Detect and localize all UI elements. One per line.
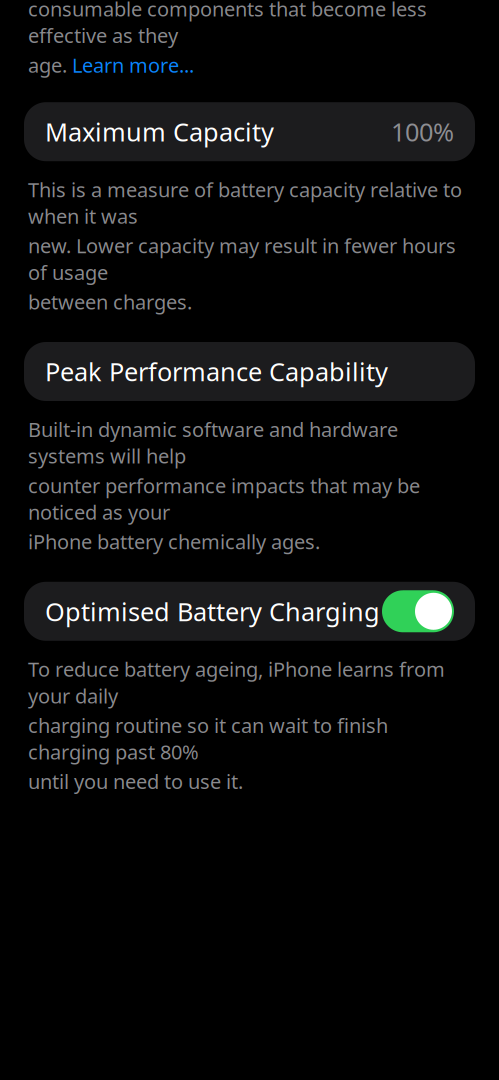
staticText: 100% (391, 115, 454, 148)
button[interactable]: Optimised Battery Charging, on (382, 590, 454, 632)
staticText: until you need to use it. (28, 768, 243, 795)
staticText: counter performance impacts that may be … (28, 472, 420, 525)
staticText: charging routine so it can wait to finis… (28, 712, 388, 765)
staticText: age. (28, 52, 72, 78)
staticText: Peak Performance Capability (45, 355, 388, 388)
staticText: iPhone battery chemically ages. (28, 528, 320, 555)
button[interactable]: Peak Performance Capability (24, 342, 475, 401)
staticText: Maximum Capacity (45, 115, 274, 148)
staticText: This is a measure of battery capacity re… (28, 176, 462, 229)
staticText: consumable components that become less e… (28, 0, 427, 49)
button[interactable]: Learn more... (72, 52, 194, 78)
staticText: Optimised Battery Charging (45, 594, 380, 628)
staticText: To reduce battery ageing, iPhone learns … (28, 656, 445, 709)
staticText: Built-in dynamic software and hardware s… (28, 416, 398, 469)
staticText: new. Lower capacity may result in fewer … (28, 232, 456, 285)
staticText: Learn more... (72, 52, 194, 78)
button[interactable]: Maximum Capacity (24, 102, 475, 161)
staticText: between charges. (28, 288, 192, 315)
button[interactable]: Optimised Battery Charging (24, 582, 475, 641)
